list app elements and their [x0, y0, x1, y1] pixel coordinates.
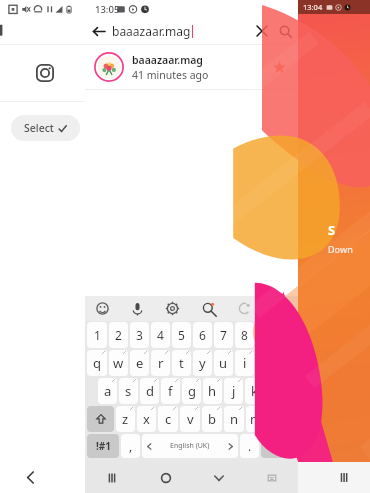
button[interactable]: Translate: [226, 296, 262, 321]
staticText: Select: [24, 121, 54, 135]
staticText: Down: [328, 243, 353, 255]
button[interactable]: Back: [0, 462, 85, 493]
button[interactable]: .: [240, 434, 259, 458]
staticText: k: [251, 382, 258, 400]
staticText: r: [158, 354, 164, 372]
staticText: Done: [267, 440, 291, 452]
button[interactable]: 7: [214, 322, 233, 348]
button[interactable]: [0, 45, 85, 101]
button[interactable]: 2: [109, 322, 128, 348]
button[interactable]: u: [214, 350, 233, 376]
button[interactable]: y: [193, 350, 212, 376]
button[interactable]: w: [109, 350, 128, 376]
staticText: 6: [199, 327, 206, 343]
button[interactable]: 5: [172, 322, 191, 348]
button[interactable]: b: [202, 406, 222, 432]
button[interactable]: Voice input: [120, 296, 155, 321]
staticText: c: [165, 410, 172, 428]
button[interactable]: i: [235, 350, 254, 376]
staticText: 41 minutes ago: [132, 68, 209, 82]
button[interactable]: 1: [87, 322, 107, 348]
staticText: t: [179, 354, 184, 372]
button[interactable]: 3: [130, 322, 149, 348]
staticText: v: [187, 410, 194, 428]
button[interactable]: 8: [235, 322, 254, 348]
staticText: q: [93, 354, 101, 372]
button[interactable]: Shift: [87, 406, 114, 432]
button[interactable]: Home: [139, 462, 192, 493]
staticText: 13:04: [303, 2, 323, 12]
button[interactable]: baaazaar.mag: [85, 45, 298, 89]
staticText: 2: [115, 327, 122, 343]
staticText: x: [143, 410, 150, 428]
button[interactable]: Search: [190, 296, 226, 321]
button[interactable]: More options: [262, 296, 298, 321]
button[interactable]: Hide keyboard: [192, 462, 245, 493]
staticText: b: [208, 410, 216, 428]
button[interactable]: s: [119, 378, 138, 404]
staticText: !#1: [96, 439, 111, 453]
staticText: S: [328, 221, 336, 239]
button[interactable]: Done: [261, 434, 296, 458]
button[interactable]: Space: [142, 434, 238, 458]
button[interactable]: Keyboard settings: [155, 296, 190, 321]
staticText: u: [219, 354, 228, 372]
button[interactable]: m: [246, 406, 266, 432]
staticText: f: [168, 382, 173, 400]
button[interactable]: 6: [193, 322, 212, 348]
button[interactable]: a: [98, 378, 117, 404]
button[interactable]: Clear: [251, 20, 273, 42]
button[interactable]: j: [224, 378, 243, 404]
button[interactable]: !#1: [87, 434, 119, 458]
button[interactable]: h: [203, 378, 222, 404]
staticText: i: [243, 354, 247, 372]
button[interactable]: d: [140, 378, 159, 404]
staticText: 3: [136, 327, 143, 343]
button[interactable]: Recents: [85, 462, 139, 493]
staticText: h: [208, 382, 217, 400]
staticText: 4: [157, 327, 164, 343]
staticText: 13:05: [95, 3, 120, 16]
staticText: w: [113, 354, 124, 372]
button[interactable]: k: [245, 378, 264, 404]
button[interactable]: c: [158, 406, 178, 432]
staticText: m: [250, 410, 263, 428]
button[interactable]: z: [116, 406, 135, 432]
staticText: baaazaar.mag: [112, 23, 191, 39]
button[interactable]: q: [87, 350, 107, 376]
button[interactable]: f: [161, 378, 180, 404]
staticText: .: [248, 438, 252, 454]
staticText: y: [199, 354, 206, 372]
button[interactable]: e: [130, 350, 149, 376]
button[interactable]: Emoji: [85, 296, 120, 321]
button[interactable]: Favourite: [269, 57, 289, 77]
staticText: d: [146, 382, 154, 400]
button[interactable]: t: [172, 350, 191, 376]
button[interactable]: Select: [11, 115, 80, 141]
button[interactable]: x: [137, 406, 156, 432]
staticText: z: [122, 410, 129, 428]
staticText: ,: [129, 438, 133, 454]
staticText: j: [232, 382, 236, 400]
button[interactable]: Keyboard layout: [245, 462, 298, 493]
button[interactable]: Back: [87, 20, 109, 42]
button[interactable]: v: [180, 406, 200, 432]
button[interactable]: 4: [151, 322, 170, 348]
staticText: 5: [178, 327, 185, 343]
staticText: 1: [94, 327, 101, 343]
button[interactable]: Recents: [298, 462, 370, 493]
button[interactable]: n: [224, 406, 244, 432]
button[interactable]: ,: [121, 434, 140, 458]
button[interactable]: Search: [274, 20, 296, 42]
button[interactable]: g: [182, 378, 201, 404]
button[interactable]: r: [151, 350, 170, 376]
